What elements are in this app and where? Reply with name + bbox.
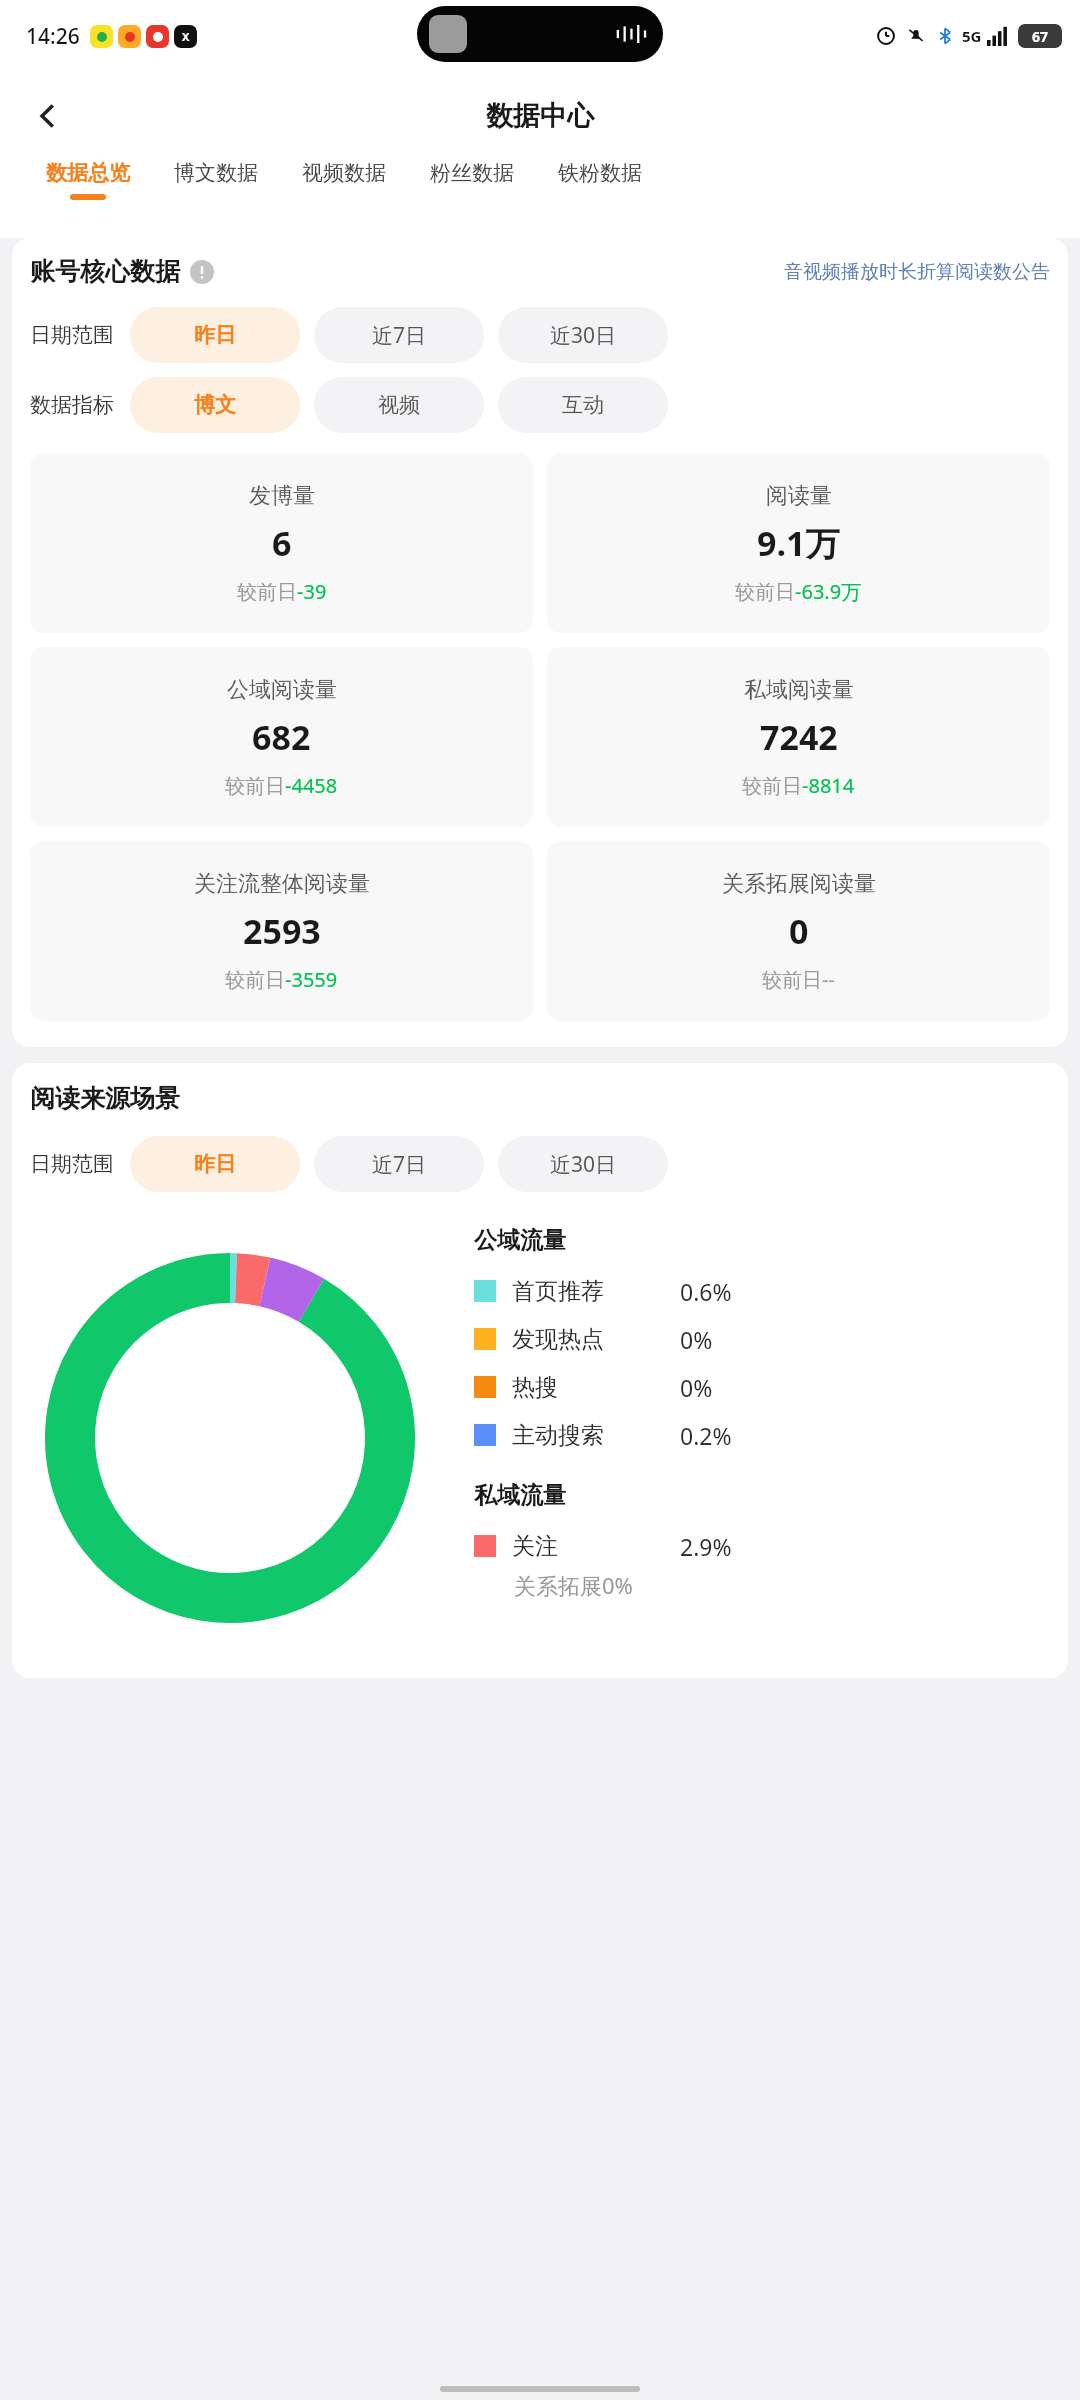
staticText: 0.6% <box>680 1276 732 1307</box>
staticText: 5G <box>962 26 982 46</box>
button[interactable]: 公域阅读量 <box>30 647 533 827</box>
staticText: 14:26 <box>26 22 80 51</box>
staticText: 近7日 <box>372 1150 427 1179</box>
staticText: 昨日 <box>194 1151 236 1177</box>
staticText: 近30日 <box>550 321 617 350</box>
button[interactable]: 博文 <box>130 377 300 433</box>
staticText: 67 <box>1032 27 1049 46</box>
staticText: 铁粉数据 <box>558 160 642 186</box>
staticText: 0% <box>680 1372 713 1403</box>
button[interactable]: 热搜 <box>474 1363 713 1411</box>
button[interactable]: 视频 <box>314 377 484 433</box>
staticText: 音视频播放时长折算阅读数公告 <box>784 260 1050 284</box>
button[interactable]: 数据总览 <box>24 160 152 200</box>
staticText: 互动 <box>562 392 604 418</box>
staticText: 数据中心 <box>486 99 594 133</box>
button[interactable]: 说明 <box>190 260 214 284</box>
staticText: 较前日-4458 <box>225 772 338 799</box>
button[interactable]: 近7日 <box>314 1136 484 1192</box>
button[interactable]: 昨日 <box>130 307 300 363</box>
staticText: 较前日-8814 <box>742 772 855 799</box>
button[interactable]: 昨日 <box>130 1136 300 1192</box>
button[interactable]: 关系拓展阅读量 <box>547 841 1050 1021</box>
staticText: 关系拓展阅读量 <box>722 870 876 898</box>
staticText: 博文数据 <box>174 160 258 186</box>
staticText: 682 <box>252 714 311 760</box>
staticText: 视频数据 <box>302 160 386 186</box>
staticText: 关系拓展0% <box>514 1570 633 1600</box>
staticText: 主动搜索 <box>512 1421 604 1450</box>
button[interactable]: 互动 <box>498 377 668 433</box>
button[interactable]: 发博量 <box>30 453 533 633</box>
staticText: 昨日 <box>194 322 236 348</box>
button[interactable]: 返回 <box>20 88 76 144</box>
staticText: 7242 <box>760 714 838 760</box>
button[interactable]: 阅读量 <box>547 453 1050 633</box>
staticText: 热搜 <box>512 1373 558 1402</box>
staticText: 关注流整体阅读量 <box>194 870 370 898</box>
staticText: 账号核心数据 <box>30 256 180 287</box>
staticText: 2.9% <box>680 1531 732 1562</box>
staticText: 2593 <box>243 908 321 954</box>
staticText: 0.2% <box>680 1420 732 1451</box>
staticText: 数据总览 <box>46 160 130 186</box>
staticText: 日期范围 <box>30 322 114 348</box>
button[interactable]: 关注 <box>474 1522 732 1570</box>
staticText: 阅读来源场景 <box>30 1083 180 1114</box>
button[interactable]: 音视频播放时长折算阅读数公告 <box>784 260 1050 284</box>
staticText: 较前日-63.9万 <box>735 578 862 605</box>
staticText: 首页推荐 <box>512 1277 604 1306</box>
button[interactable]: 主动搜索 <box>474 1411 732 1459</box>
staticText: 较前日-- <box>762 966 835 993</box>
button[interactable]: 近30日 <box>498 307 668 363</box>
staticText: 日期范围 <box>30 1151 114 1177</box>
staticText: 0% <box>680 1324 713 1355</box>
staticText: 发博量 <box>249 482 315 510</box>
staticText: 9.1万 <box>757 520 840 566</box>
button[interactable]: 视频数据 <box>280 160 408 194</box>
staticText: 近7日 <box>372 321 427 350</box>
staticText: 博文 <box>194 392 236 418</box>
staticText: 数据指标 <box>30 392 114 418</box>
staticText: 6 <box>272 520 292 566</box>
staticText: 公域流量 <box>474 1226 566 1255</box>
button[interactable]: 发现热点 <box>474 1315 713 1363</box>
staticText: X <box>182 29 190 44</box>
staticText: 视频 <box>378 392 420 418</box>
staticText: 发现热点 <box>512 1325 604 1354</box>
button[interactable]: 博文数据 <box>152 160 280 194</box>
button[interactable]: 首页推荐 <box>474 1267 732 1315</box>
staticText: 私域流量 <box>474 1481 566 1510</box>
staticText: 较前日-3559 <box>225 966 338 993</box>
staticText: 较前日-39 <box>237 578 327 605</box>
button[interactable]: 近30日 <box>498 1136 668 1192</box>
staticText: 公域阅读量 <box>227 676 337 704</box>
button[interactable]: 近7日 <box>314 307 484 363</box>
staticText: 近30日 <box>550 1150 617 1179</box>
staticText: 关注 <box>512 1532 558 1561</box>
button[interactable]: 粉丝数据 <box>408 160 536 194</box>
button[interactable]: 关注流整体阅读量 <box>30 841 533 1021</box>
staticText: 阅读量 <box>766 482 832 510</box>
staticText: 0 <box>789 908 809 954</box>
button[interactable]: 铁粉数据 <box>536 160 664 194</box>
staticText: 粉丝数据 <box>430 160 514 186</box>
button[interactable]: 私域阅读量 <box>547 647 1050 827</box>
staticText: 私域阅读量 <box>744 676 854 704</box>
